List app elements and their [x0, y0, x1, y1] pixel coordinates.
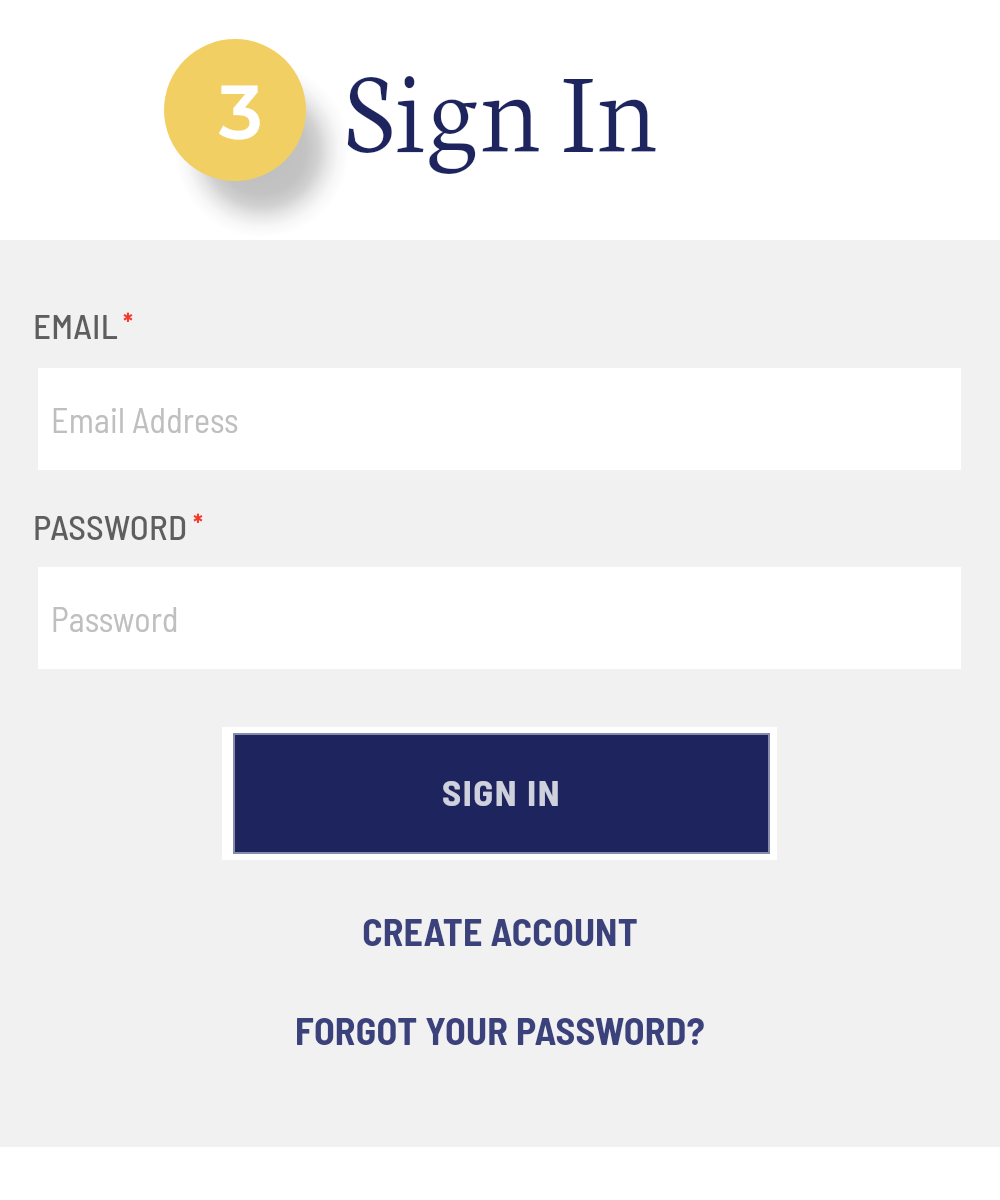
- staticText: 3: [219, 66, 263, 157]
- staticText: *: [123, 307, 133, 338]
- staticText: CREATE ACCOUNT: [362, 908, 638, 954]
- button[interactable]: FORGOT YOUR PASSWORD?: [283, 999, 717, 1061]
- staticText: EMAIL: [33, 304, 118, 346]
- button[interactable]: Password: [38, 567, 961, 669]
- button[interactable]: CREATE ACCOUNT: [350, 900, 650, 962]
- staticText: SIGN IN: [442, 769, 561, 813]
- staticText: Sign In: [345, 30, 659, 181]
- button[interactable]: SIGN IN: [235, 735, 768, 852]
- staticText: PASSWORD: [33, 505, 188, 547]
- button[interactable]: Email Address: [38, 368, 961, 470]
- staticText: *: [193, 508, 203, 539]
- staticText: FORGOT YOUR PASSWORD?: [295, 1007, 705, 1053]
- other: Step 3: [164, 39, 306, 181]
- staticText: Email Address: [51, 399, 239, 440]
- staticText: Password: [51, 598, 179, 639]
